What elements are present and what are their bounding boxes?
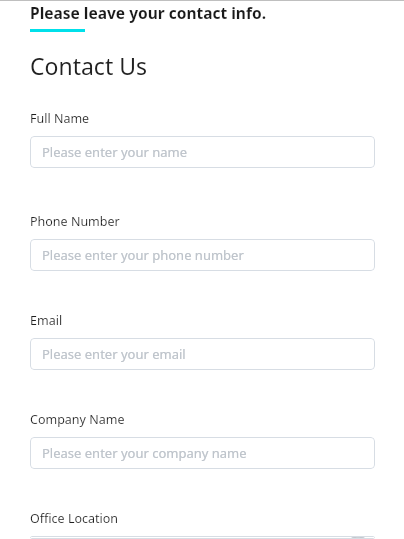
staticText: Full Name xyxy=(30,110,90,127)
staticText: Please leave your contact info. xyxy=(30,2,266,23)
staticText: Company Name xyxy=(30,411,125,428)
staticText: Please select your office location xyxy=(42,536,351,539)
staticText: Please enter your name xyxy=(42,143,365,161)
button[interactable]: Please enter your email xyxy=(30,338,375,370)
staticText: Please enter your phone number xyxy=(42,246,365,264)
staticText: Phone Number xyxy=(30,213,120,230)
button[interactable]: Please select your office location xyxy=(30,536,375,539)
button[interactable]: Please enter your company name xyxy=(30,437,375,469)
staticText: Email xyxy=(30,312,63,329)
staticText: Office Location xyxy=(30,510,119,527)
button[interactable]: Please enter your name xyxy=(30,136,375,168)
other: Expand office location options xyxy=(351,536,365,539)
button[interactable]: Please enter your phone number xyxy=(30,239,375,271)
staticText: Please enter your company name xyxy=(42,444,365,462)
staticText: Please enter your email xyxy=(42,345,365,363)
staticText: Contact Us xyxy=(30,50,148,81)
